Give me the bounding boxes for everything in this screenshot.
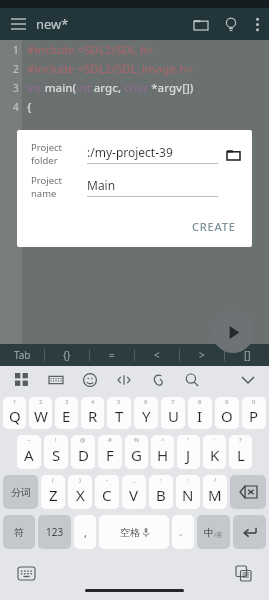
- button[interactable]: _: [122, 475, 146, 509]
- button[interactable]: Tab: [0, 344, 44, 366]
- staticText: 1: [13, 43, 19, 57]
- staticText: I: [197, 406, 203, 426]
- staticText: %: [134, 436, 139, 444]
- button[interactable]: 123: [38, 515, 71, 549]
- button[interactable]: Enter: [233, 515, 266, 549]
- button[interactable]: 空格: [99, 515, 169, 549]
- staticText: #include <SDL2/SDL_image.h>: [27, 61, 193, 77]
- staticText: name: [31, 187, 57, 200]
- button[interactable]: Backspace: [230, 475, 266, 509]
- button[interactable]: 符: [3, 515, 35, 549]
- button[interactable]: Choose folder: [225, 146, 242, 163]
- button[interactable]: !: [44, 435, 68, 469]
- staticText: ^: [161, 436, 165, 444]
- staticText: 空格: [120, 526, 140, 539]
- staticText: A: [24, 445, 34, 465]
- button[interactable]: Attach: [143, 367, 172, 393]
- button[interactable]: 分词: [3, 475, 38, 509]
- button[interactable]: Open folder: [185, 8, 216, 40]
- button[interactable]: Run: [212, 311, 254, 353]
- button[interactable]: 6: [134, 397, 158, 429]
- button[interactable]: Hint: [216, 8, 245, 40]
- button[interactable]: Keyboard layout: [41, 367, 70, 393]
- staticText: G: [131, 445, 142, 465]
- staticText: 5: [117, 398, 121, 406]
- staticText: K: [210, 445, 220, 465]
- staticText: 4: [13, 100, 19, 114]
- staticText: S: [52, 445, 61, 465]
- button[interactable]: ~: [17, 435, 41, 469]
- button[interactable]: Menu: [0, 8, 36, 40]
- button[interactable]: 。: [172, 515, 194, 549]
- button[interactable]: =: [90, 344, 134, 366]
- button[interactable]: Hide keyboard: [233, 367, 263, 393]
- button[interactable]: Clipboard: [233, 563, 253, 583]
- button[interactable]: ;: [176, 475, 200, 509]
- staticText: <: [154, 348, 160, 362]
- staticText: ?: [239, 436, 242, 444]
- button[interactable]: 0: [242, 397, 266, 429]
- button[interactable]: 7: [161, 397, 185, 429]
- button[interactable]: 中: [197, 515, 230, 549]
- button[interactable]: #: [98, 435, 122, 469]
- staticText: new*: [36, 15, 69, 33]
- button[interactable]: (: [41, 475, 65, 509]
- button[interactable]: <: [135, 344, 179, 366]
- button[interactable]: ): [68, 475, 92, 509]
- button[interactable]: 4: [81, 397, 104, 429]
- staticText: F: [106, 445, 114, 465]
- staticText: {}: [63, 348, 71, 362]
- button[interactable]: ?: [229, 435, 252, 469]
- button[interactable]: ': [203, 435, 226, 469]
- staticText: P: [249, 406, 259, 426]
- button[interactable]: Search: [177, 367, 206, 393]
- button[interactable]: ,: [74, 515, 96, 549]
- button[interactable]: ^: [151, 435, 174, 469]
- staticText: V: [129, 485, 139, 505]
- button[interactable]: 9: [215, 397, 239, 429]
- staticText: {: [27, 99, 32, 115]
- staticText: 6: [144, 398, 148, 406]
- button[interactable]: {}: [45, 344, 89, 366]
- staticText: ~: [27, 436, 31, 444]
- staticText: =: [109, 348, 115, 362]
- staticText: U: [168, 406, 179, 426]
- staticText: Project: [31, 141, 63, 154]
- button[interactable]: Clipboard: [7, 367, 36, 393]
- button[interactable]: >: [180, 344, 224, 366]
- button[interactable]: 5: [107, 397, 131, 429]
- button[interactable]: Text edit: [109, 367, 138, 393]
- staticText: N: [182, 485, 194, 505]
- button[interactable]: Emoji: [75, 367, 104, 393]
- staticText: E: [62, 406, 71, 426]
- button[interactable]: 8: [188, 397, 212, 429]
- button[interactable]: More options: [245, 8, 269, 40]
- staticText: Project: [31, 174, 63, 187]
- staticText: (: [52, 476, 54, 484]
- button[interactable]: %: [125, 435, 148, 469]
- button[interactable]: CREATE: [184, 214, 244, 239]
- staticText: #include <SDL2/SDL.h>: [27, 42, 154, 58]
- staticText: 0: [252, 398, 256, 406]
- button[interactable]: 1: [3, 397, 26, 429]
- button[interactable]: 2: [29, 397, 52, 429]
- staticText: 123: [46, 525, 64, 539]
- staticText: Tab: [14, 348, 31, 362]
- button[interactable]: 3: [55, 397, 78, 429]
- staticText: ,: [84, 525, 87, 540]
- button[interactable]: ": [177, 435, 200, 469]
- staticText: folder: [31, 154, 58, 167]
- button[interactable]: -: [95, 475, 119, 509]
- staticText: X: [76, 485, 85, 505]
- staticText: 8: [198, 398, 202, 406]
- button[interactable]: /: [203, 475, 227, 509]
- staticText: 2: [39, 398, 43, 406]
- button[interactable]: Switch keyboard: [16, 563, 36, 583]
- staticText: D: [78, 445, 89, 465]
- staticText: 。: [179, 527, 187, 537]
- staticText: 符: [14, 526, 24, 539]
- staticText: B: [156, 485, 166, 505]
- button[interactable]: @: [71, 435, 95, 469]
- button[interactable]: :: [149, 475, 173, 509]
- button[interactable]: []: [225, 344, 269, 366]
